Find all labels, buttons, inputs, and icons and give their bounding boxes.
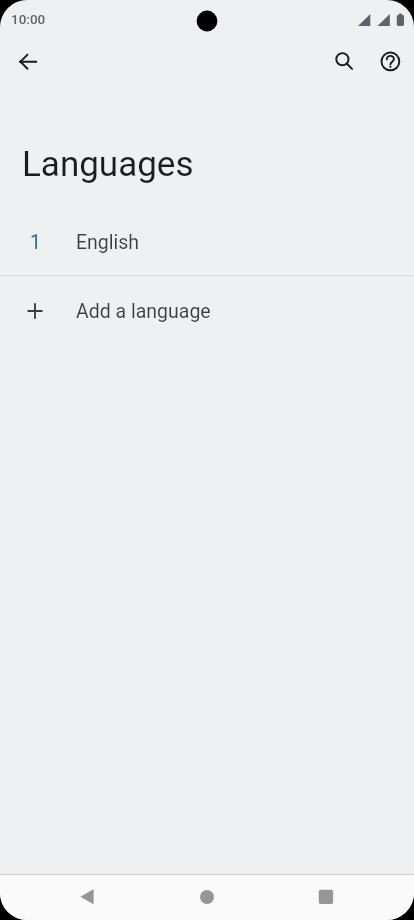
button[interactable]: Add a language (0, 276, 414, 346)
staticText: English (76, 231, 140, 254)
staticText: Languages (22, 144, 194, 185)
button[interactable]: Help (370, 42, 410, 82)
button[interactable]: Home (185, 875, 229, 919)
staticText: 10:00 (11, 11, 46, 27)
button[interactable]: 1 (0, 210, 414, 275)
button[interactable]: Navigate up (8, 42, 48, 82)
staticText: 1 (30, 231, 41, 254)
staticText: Add a language (76, 300, 211, 323)
button[interactable]: Back (66, 875, 110, 919)
button[interactable]: Search (324, 42, 364, 82)
button[interactable]: Recent apps (304, 875, 348, 919)
